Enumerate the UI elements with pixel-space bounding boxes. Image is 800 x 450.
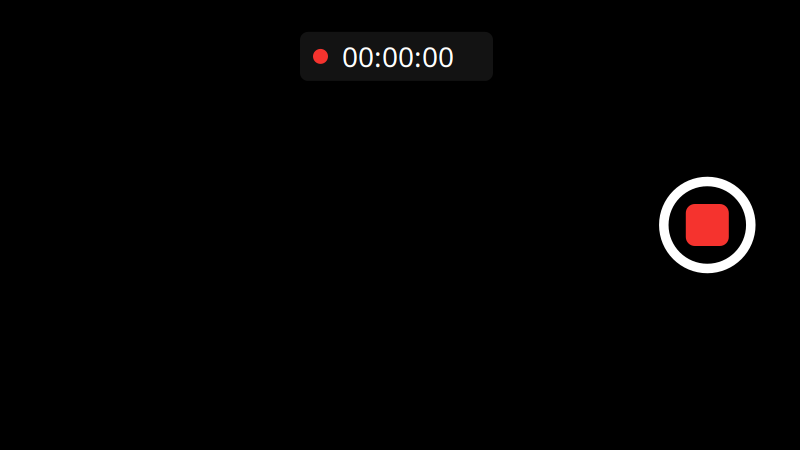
button[interactable]: Stop recording: [658, 176, 756, 274]
button[interactable]: Recording, 00:00:00: [300, 32, 493, 81]
staticText: 00:00:00: [342, 38, 454, 75]
